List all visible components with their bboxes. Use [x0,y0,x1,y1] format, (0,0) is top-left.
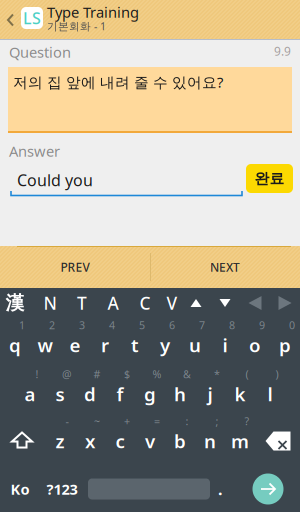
button[interactable]: Ko [0,468,40,510]
staticText: u [189,333,201,357]
button[interactable]: Back [0,0,21,40]
button[interactable]: # [75,366,105,408]
staticText: s [55,382,64,406]
staticText: 2 [49,318,55,332]
staticText: ? [244,414,249,428]
staticText: Answer [9,141,60,161]
button[interactable]: . [208,468,232,510]
staticText: ?123 [46,479,77,499]
button[interactable]: 0 [270,317,300,359]
staticText: 8 [229,318,235,332]
staticText: d [84,382,96,406]
button[interactable]: 4 [90,317,120,359]
staticText: b [174,429,186,453]
staticText: m [231,429,249,453]
staticText: 4 [109,318,115,332]
staticText: ) [275,367,278,381]
staticText: t [131,333,139,357]
staticText: r [101,333,109,357]
staticText: ~ [94,414,100,428]
staticText: * [214,367,220,381]
button[interactable]: T [67,289,97,317]
button[interactable]: 6 [150,317,180,359]
staticText: ! [35,367,38,381]
button[interactable]: C [130,289,160,317]
button[interactable]: & [165,366,195,408]
button[interactable]: Left [240,289,270,317]
button[interactable]: A [98,289,128,317]
button[interactable]: ! [15,366,45,408]
button[interactable]: 5 [120,317,150,359]
button[interactable]: NEXT [150,246,300,288]
staticText: x [85,429,95,453]
button[interactable]: = [135,413,165,455]
button[interactable]: @ [45,366,75,408]
staticText: y [160,333,170,357]
staticText: T [77,291,87,314]
button[interactable]: ( [225,366,255,408]
staticText: k [234,382,245,406]
button[interactable]: PREV [0,246,150,288]
button[interactable]: * [195,366,225,408]
staticText: 기본회화 - 1 [47,19,106,33]
staticText: Type Training [47,2,139,22]
button[interactable]: Enter [248,468,288,510]
staticText: g [144,382,156,406]
button[interactable]: 7 [180,317,210,359]
button[interactable]: + [105,413,135,455]
staticText: C [139,291,150,314]
button[interactable]: N [35,289,65,317]
staticText: a [24,382,35,406]
staticText: 9.9 [274,43,291,59]
button[interactable]: : [165,413,195,455]
button[interactable]: Down [211,289,239,317]
staticText: 9 [259,318,265,332]
button[interactable]: Shift [0,418,44,462]
button[interactable]: 漢 [0,289,30,317]
button[interactable]: 9 [240,317,270,359]
staticText: 0 [289,318,295,332]
button[interactable]: ~ [75,413,105,455]
staticText: i [222,333,227,357]
staticText: NEXT [210,259,240,275]
staticText: 6 [169,318,175,332]
staticText: $ [124,367,130,381]
staticText: 5 [139,318,145,332]
button[interactable]: 3 [60,317,90,359]
button[interactable]: - [45,413,75,455]
button[interactable]: Up [182,289,210,317]
staticText: e [69,333,80,357]
staticText: ; [215,414,218,428]
button[interactable]: V [157,289,187,317]
staticText: ( [245,367,248,381]
staticText: f [116,382,123,406]
staticText: V [166,291,177,314]
staticText: q [9,333,21,357]
staticText: n [204,429,216,453]
button[interactable]: Backspace [261,424,295,458]
staticText: @ [62,367,72,381]
button[interactable]: ) [255,366,285,408]
button[interactable]: $ [105,366,135,408]
button[interactable]: 8 [210,317,240,359]
staticText: A [107,291,118,314]
button[interactable]: 1 [0,317,30,359]
button[interactable]: 2 [30,317,60,359]
staticText: Could you [17,169,93,191]
staticText: z [55,429,64,453]
button[interactable]: ; [195,413,225,455]
staticText: # [93,367,100,381]
staticText: p [279,333,291,357]
button[interactable]: 완료 [246,164,293,193]
staticText: c [115,429,124,453]
button[interactable]: Space [85,468,213,510]
button[interactable]: ? [225,413,255,455]
staticText: : [185,414,188,428]
button[interactable]: ?123 [40,468,84,510]
staticText: j [207,382,212,406]
button[interactable]: Right [270,289,300,317]
button[interactable]: % [135,366,165,408]
staticText: . [218,478,222,500]
staticText: PREV [60,259,89,275]
staticText: h [174,382,186,406]
